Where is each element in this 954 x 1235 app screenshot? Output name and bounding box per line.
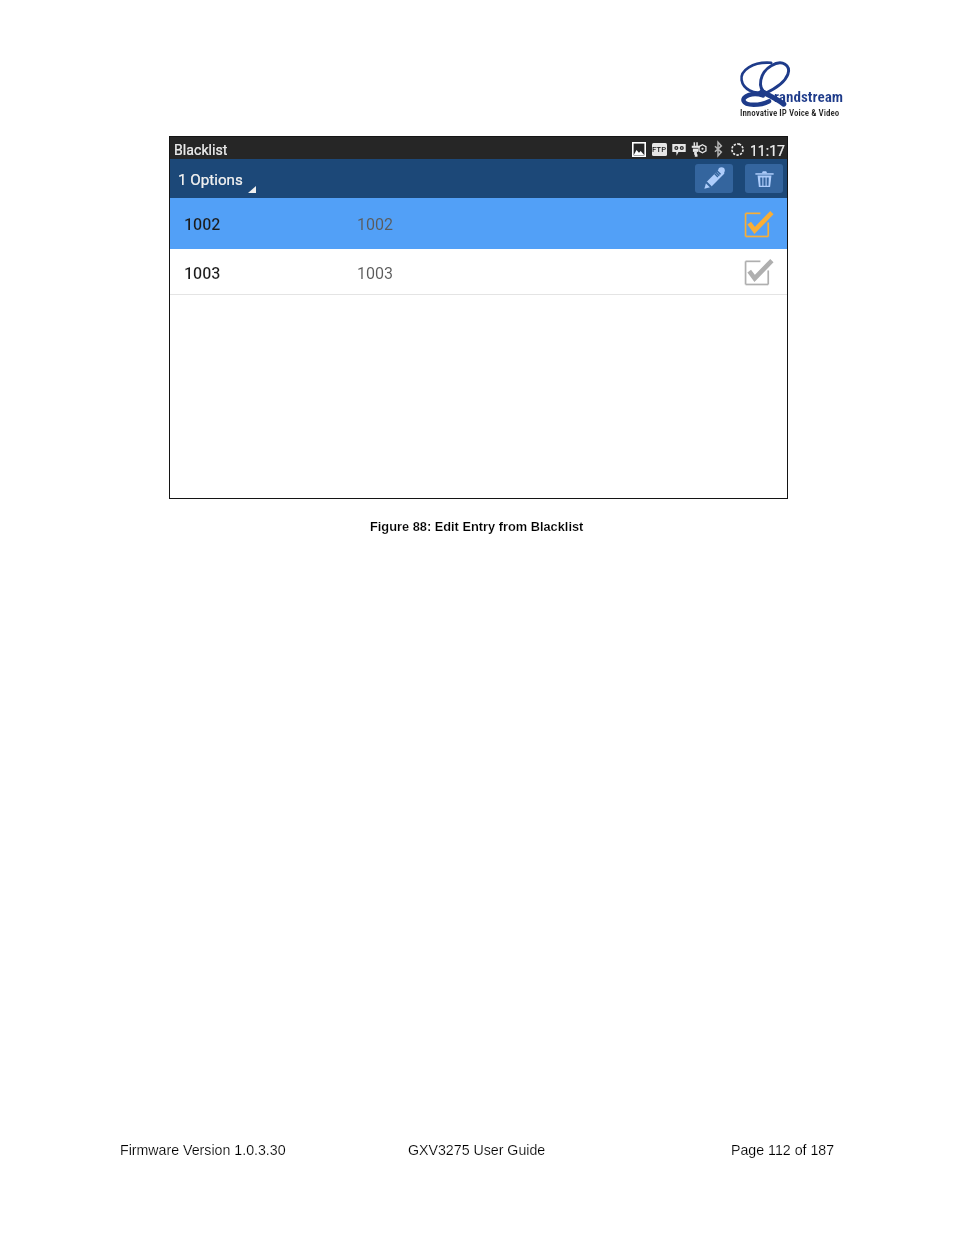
staticText: Page 112 of 187 <box>731 1142 835 1158</box>
button[interactable]: 1002 <box>170 198 787 249</box>
button[interactable]: Delete <box>745 164 783 193</box>
staticText: randstream <box>774 88 844 106</box>
staticText: 11:17 <box>750 143 785 159</box>
button[interactable]: 1003 <box>170 249 787 295</box>
staticText: Firmware Version 1.0.3.30 <box>120 1142 286 1158</box>
staticText: Blacklist <box>174 142 228 159</box>
staticText: 1003 <box>357 264 393 283</box>
staticText: 1 Options <box>178 171 243 189</box>
staticText: 1002 <box>184 215 221 234</box>
staticText: 1002 <box>357 215 393 234</box>
staticText: GXV3275 User Guide <box>408 1142 546 1158</box>
button[interactable]: Edit <box>695 164 733 193</box>
staticText: FTP <box>652 145 667 154</box>
staticText: Innovative IP Voice & Video <box>740 108 840 119</box>
staticText: Figure 88: Edit Entry from Blacklist <box>370 519 584 533</box>
button[interactable]: 1 Options <box>170 159 266 198</box>
staticText: 1003 <box>184 264 221 283</box>
